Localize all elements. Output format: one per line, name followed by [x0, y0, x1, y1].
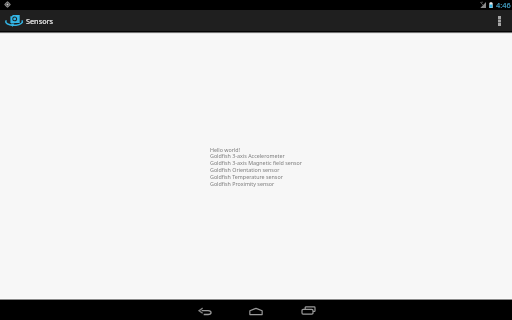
staticText: Sensors: [26, 16, 54, 26]
button[interactable]: Recents: [288, 300, 328, 320]
button[interactable]: More options: [487, 10, 511, 31]
staticText: Hello world! Goldfish 3-axis Acceleromet…: [210, 146, 303, 188]
button[interactable]: Back: [185, 300, 225, 320]
staticText: 4:46: [496, 0, 511, 10]
button[interactable]: Home: [236, 300, 276, 320]
